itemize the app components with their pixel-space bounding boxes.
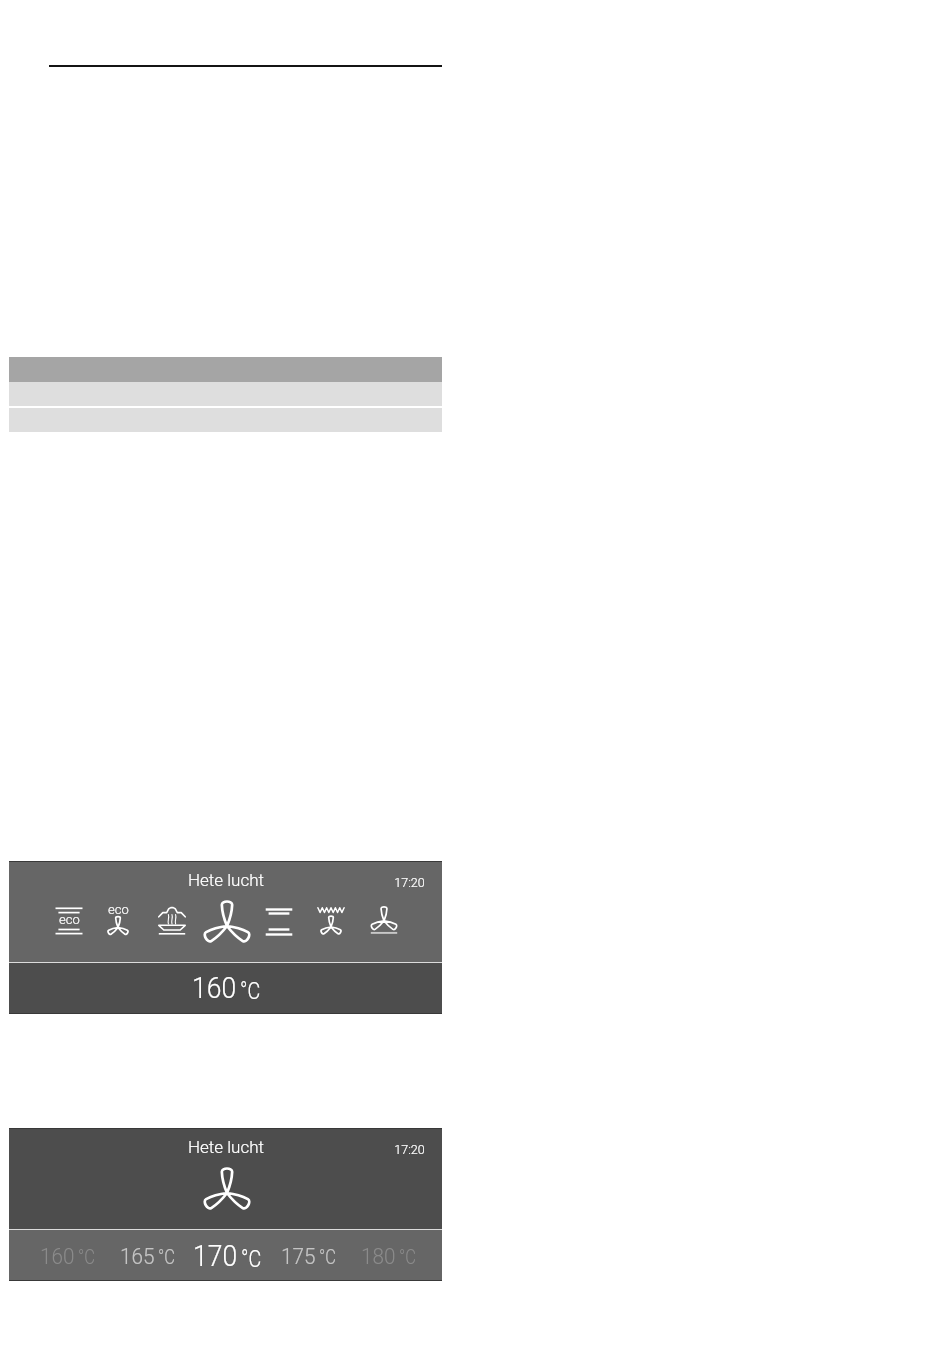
staticText: 180 xyxy=(361,1243,396,1269)
staticText: 17:20 xyxy=(394,1141,425,1157)
button[interactable]: Eco mode xyxy=(54,906,84,936)
staticText: °C xyxy=(240,976,261,1005)
staticText: °C xyxy=(399,1245,417,1269)
button[interactable]: 180 xyxy=(348,1230,428,1281)
button[interactable]: Eco hot air xyxy=(103,906,133,936)
staticText: °C xyxy=(158,1245,176,1269)
button[interactable]: Pizza setting xyxy=(157,906,187,936)
button[interactable]: Top and bottom heating xyxy=(264,907,294,937)
button[interactable]: Grill with fan xyxy=(316,906,346,936)
staticText: Hete lucht xyxy=(188,1137,264,1157)
staticText: eco xyxy=(59,912,80,927)
staticText: 17:20 xyxy=(394,874,425,890)
staticText: eco xyxy=(108,902,129,917)
staticText: °C xyxy=(319,1245,337,1269)
button[interactable]: 160 xyxy=(27,1230,107,1281)
button[interactable]: Hot air with bottom heat xyxy=(369,905,399,935)
staticText: 160 xyxy=(40,1243,75,1269)
staticText: °C xyxy=(78,1245,96,1269)
button[interactable]: 175 xyxy=(268,1230,348,1281)
button[interactable]: 165 xyxy=(107,1230,187,1281)
button[interactable]: Hot air xyxy=(199,1165,255,1221)
staticText: Hete lucht xyxy=(188,870,264,890)
staticText: 160 xyxy=(192,971,236,1005)
staticText: 165 xyxy=(120,1243,155,1269)
button[interactable]: Hot air xyxy=(199,898,255,954)
staticText: °C xyxy=(241,1244,262,1273)
staticText: 170 xyxy=(193,1239,237,1273)
staticText: 175 xyxy=(281,1243,316,1269)
button[interactable]: 170 xyxy=(187,1230,267,1281)
